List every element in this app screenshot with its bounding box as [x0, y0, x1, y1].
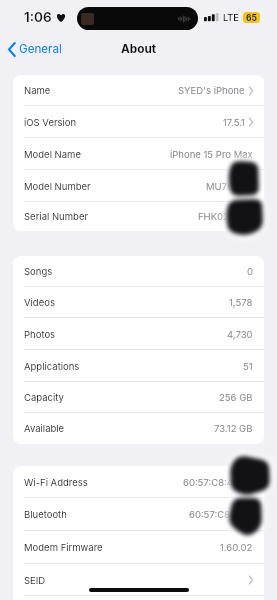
button[interactable]: Bluetooth	[13, 498, 264, 531]
button[interactable]: Modem Firmware	[13, 531, 264, 564]
staticText: SYED's iPhone	[178, 85, 245, 96]
button[interactable]: Model Number	[13, 170, 264, 202]
staticText: General	[19, 42, 62, 56]
staticText: 4,730	[227, 329, 253, 340]
staticText: Available	[24, 423, 65, 434]
staticText: Songs	[24, 266, 53, 277]
staticText: 17.5.1	[223, 117, 245, 128]
button[interactable]: SEID	[13, 564, 264, 596]
staticText: 73.12 GB	[214, 423, 253, 434]
staticText: 1,578	[229, 297, 253, 308]
button[interactable]: Available	[13, 413, 264, 444]
staticText: Wi-Fi Address	[24, 477, 88, 488]
staticText: Model Name	[24, 149, 81, 160]
staticText: SEID	[24, 575, 46, 586]
staticText: Videos	[24, 297, 55, 308]
staticText: Model Number	[24, 181, 91, 192]
staticText: 60:57:C8:55:F	[189, 509, 253, 520]
staticText: Bluetooth	[24, 509, 67, 520]
staticText: 256 GB	[219, 392, 253, 403]
staticText: 1:06	[24, 9, 52, 25]
staticText: 65	[246, 13, 257, 23]
button[interactable]: General	[7, 39, 63, 59]
button[interactable]: Capacity	[13, 382, 264, 413]
button[interactable]: Model Name	[13, 138, 264, 170]
staticText: 0	[247, 266, 253, 277]
button[interactable]: Name	[13, 75, 264, 106]
staticText: 60:57:C8:4A:1T	[183, 477, 253, 488]
staticText: Modem Firmware	[24, 542, 103, 553]
button[interactable]: Serial Number	[13, 202, 264, 231]
button[interactable]: iOS Version	[13, 106, 264, 138]
button[interactable]: Photos	[13, 318, 264, 350]
staticText: Photos	[24, 329, 56, 340]
staticText: Applications	[24, 361, 80, 372]
staticText: iPhone 15 Pro Max	[170, 149, 253, 160]
staticText: FHK02409F	[198, 211, 253, 222]
staticText: 51	[243, 361, 253, 372]
staticText: iOS Version	[24, 117, 77, 128]
button[interactable]: Applications	[13, 350, 264, 382]
staticText: Serial Number	[24, 211, 88, 222]
button[interactable]: Videos	[13, 287, 264, 318]
staticText: About	[121, 42, 157, 56]
button[interactable]: Songs	[13, 256, 264, 287]
staticText: MU7931/A	[206, 181, 253, 192]
button[interactable]: Wi-Fi Address	[13, 466, 264, 498]
staticText: 1.60.02	[220, 542, 253, 553]
staticText: Name	[24, 85, 51, 96]
staticText: Capacity	[24, 392, 64, 403]
staticText: LTE	[223, 12, 239, 23]
